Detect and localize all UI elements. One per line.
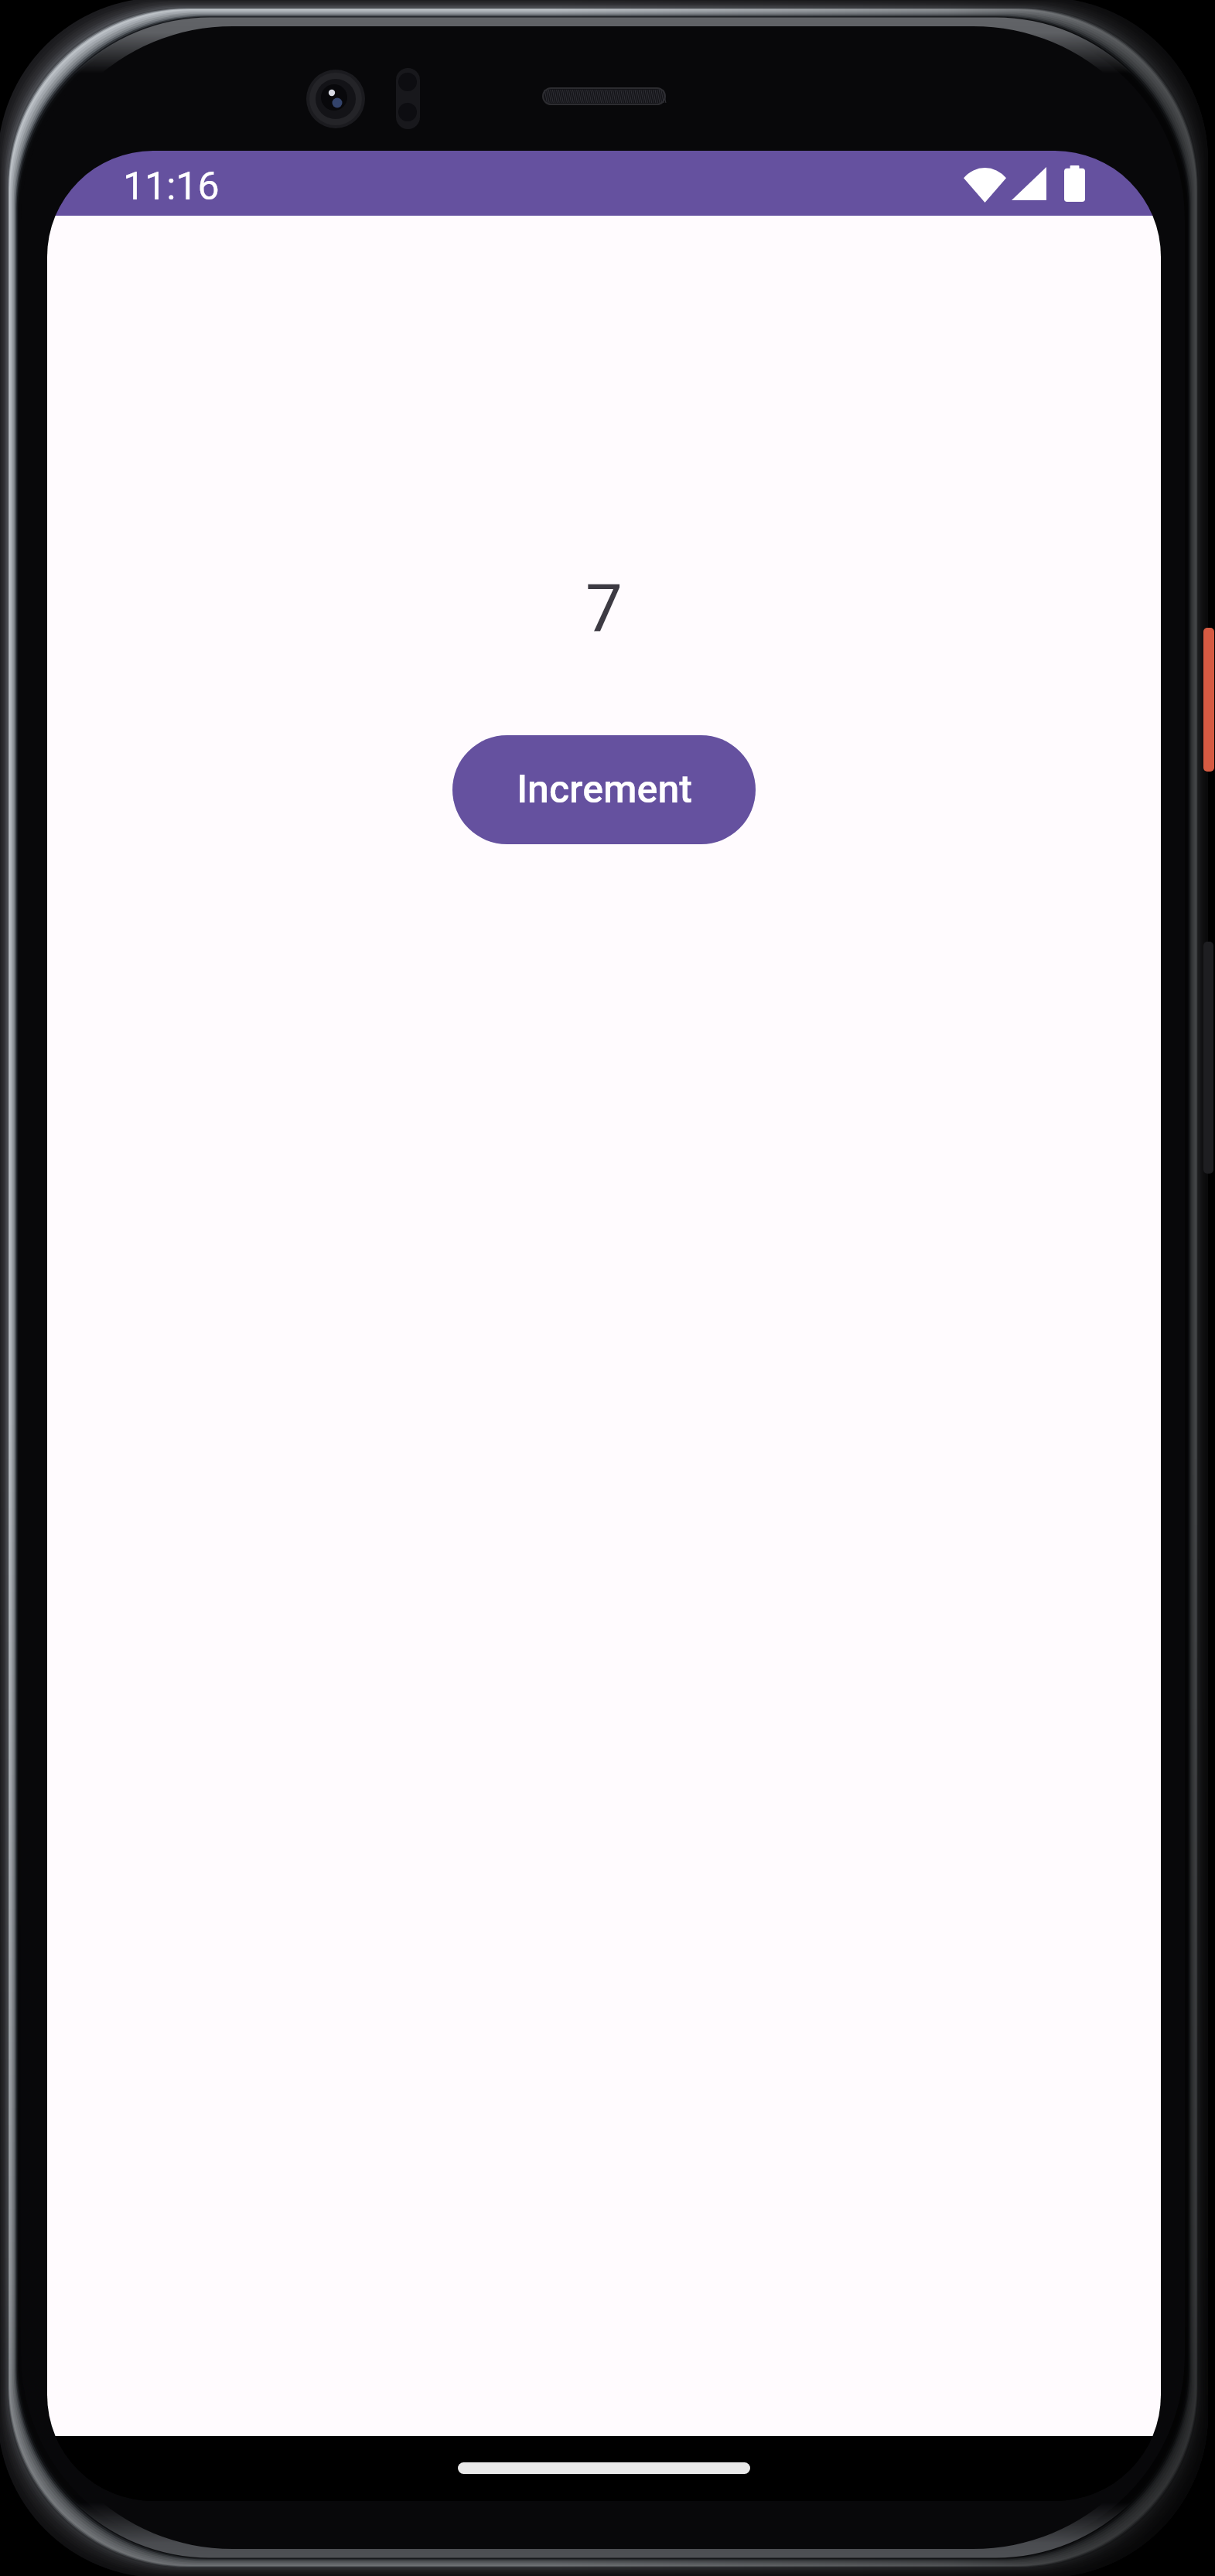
button[interactable]: Increment	[452, 735, 756, 844]
staticText: 11:16	[123, 164, 220, 210]
staticText: Increment	[517, 767, 692, 813]
staticText: 7	[585, 570, 623, 647]
